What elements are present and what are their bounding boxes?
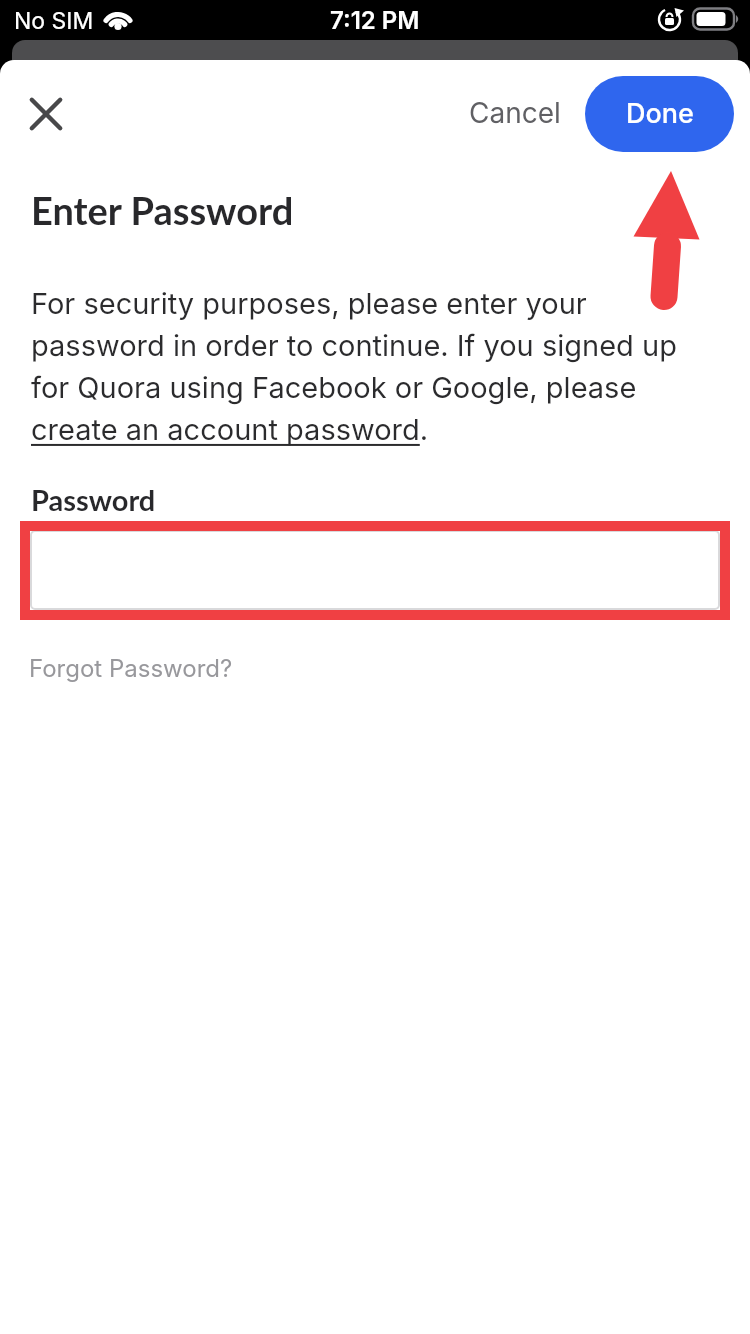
staticText: Password (31, 482, 156, 517)
staticText: Done (626, 97, 694, 130)
staticText: 7:12 PM (330, 6, 420, 35)
staticText: For security purposes, please enter your… (31, 286, 677, 447)
staticText: Cancel (469, 96, 561, 130)
staticText: Forgot Password? (29, 654, 233, 683)
button[interactable]: Cancel (450, 84, 580, 141)
button[interactable]: Done (585, 76, 734, 152)
staticText: No SIM (14, 7, 94, 35)
staticText: Enter Password (31, 187, 294, 233)
button[interactable] (30, 530, 720, 610)
button[interactable] (16, 84, 76, 144)
button[interactable] (31, 412, 427, 450)
button[interactable]: Forgot Password? (29, 654, 233, 683)
